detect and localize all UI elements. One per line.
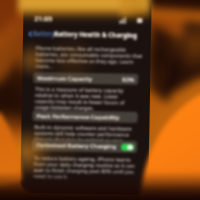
button[interactable]: Optimized Battery Charging toggle <box>121 144 134 151</box>
button[interactable]: Back to Battery <box>28 29 55 38</box>
staticText: Battery <box>33 29 55 38</box>
button[interactable]: Maximum Capacity <box>33 72 138 85</box>
staticText: Maximum Capacity <box>37 74 92 83</box>
button[interactable]: Optimized Battery Charging <box>32 139 137 153</box>
staticText: 21:09 <box>34 14 52 24</box>
staticText: Phone batteries, like all rechargeable b… <box>35 44 143 71</box>
staticText: Optimized Battery Charging <box>36 141 117 150</box>
staticText: Built-in dynamic software and hardware s… <box>34 123 138 150</box>
staticText: Battery Health & Charging <box>54 29 137 40</box>
staticText: 82% <box>122 76 134 84</box>
staticText: Peak Performance Capability <box>36 112 120 121</box>
staticText: This is a measure of battery capacity re… <box>35 85 139 112</box>
button[interactable]: Peak Performance Capability <box>32 110 138 123</box>
staticText: To reduce battery ageing, iPhone learns … <box>33 154 138 181</box>
